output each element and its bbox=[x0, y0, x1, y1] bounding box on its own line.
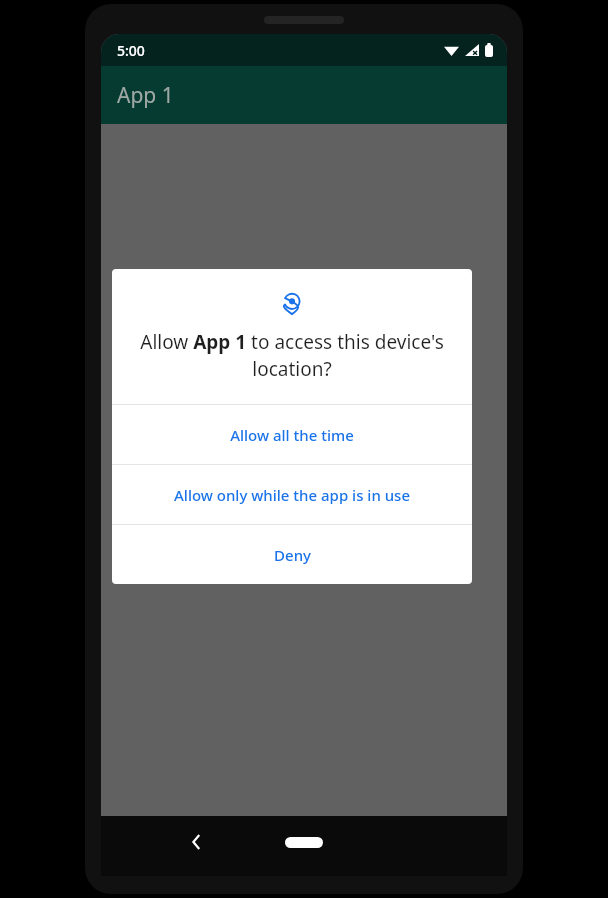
staticText: 5:00 bbox=[117, 41, 145, 60]
staticText: App 1 bbox=[117, 81, 174, 110]
button[interactable]: Home bbox=[276, 822, 332, 862]
staticText: Allow only while the app is in use bbox=[174, 485, 410, 505]
button[interactable]: Back bbox=[177, 822, 217, 862]
staticText: Allow all the time bbox=[230, 425, 354, 445]
button[interactable]: Deny bbox=[112, 525, 472, 584]
staticText: Deny bbox=[274, 545, 311, 565]
staticText: Allow App 1 to access this device's loca… bbox=[136, 329, 448, 382]
button[interactable]: Allow only while the app is in use bbox=[112, 465, 472, 524]
button[interactable]: Allow all the time bbox=[112, 405, 472, 464]
